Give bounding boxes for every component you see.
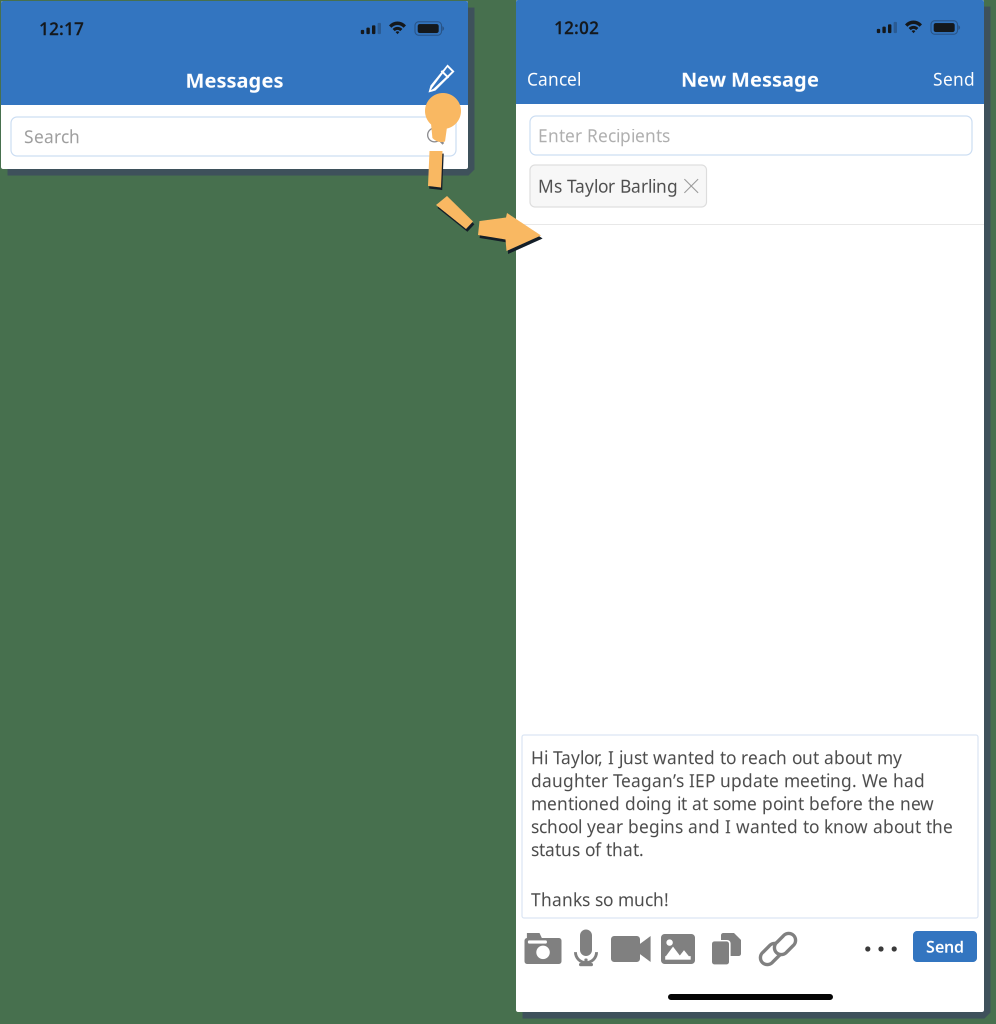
- staticText: Cancel: [527, 67, 581, 90]
- button[interactable]: Cancel: [518, 54, 602, 104]
- staticText: Send: [933, 67, 975, 90]
- button[interactable]: Take photo: [521, 926, 565, 972]
- button[interactable]: Ms Taylor Barling: [530, 165, 706, 207]
- button[interactable]: Compose: [420, 55, 464, 103]
- staticText: Messages: [185, 67, 283, 93]
- button[interactable]: Enter Recipients: [530, 116, 972, 155]
- staticText: 12:17: [39, 17, 84, 40]
- button[interactable]: Attach file: [706, 925, 748, 973]
- staticText: New Message: [681, 66, 819, 92]
- staticText: Send: [926, 936, 964, 957]
- staticText: Hi Taylor, I just wanted to reach out ab…: [531, 746, 953, 861]
- staticText: Enter Recipients: [538, 124, 670, 147]
- staticText: Search: [24, 125, 80, 148]
- button[interactable]: More options: [856, 928, 906, 970]
- button[interactable]: Record video: [608, 926, 654, 972]
- staticText: Ms Taylor Barling: [538, 174, 678, 197]
- button[interactable]: Record audio: [566, 925, 606, 971]
- button[interactable]: Send: [913, 931, 977, 962]
- button[interactable]: Search: [11, 117, 456, 156]
- button[interactable]: Insert image: [657, 926, 699, 972]
- button[interactable]: Send: [898, 54, 982, 104]
- staticText: Thanks so much!: [531, 888, 669, 911]
- staticText: 12:02: [554, 16, 599, 39]
- button[interactable]: Insert link: [756, 925, 800, 973]
